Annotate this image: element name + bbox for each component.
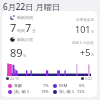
button[interactable]: 浅い眠り	[8, 89, 49, 94]
staticText: 101	[75, 23, 91, 35]
staticText: 5:22	[85, 76, 93, 81]
button[interactable]: 覚醒	[8, 83, 49, 88]
staticText: 深い眠り	[59, 89, 76, 94]
staticText: 0%	[79, 83, 85, 88]
staticText: 覚醒	[14, 83, 22, 88]
staticText: %	[91, 52, 94, 57]
staticText: 19%	[41, 89, 49, 94]
button[interactable]: REM	[53, 83, 85, 88]
staticText: 72%	[77, 89, 85, 94]
staticText: 前回との比較	[72, 41, 94, 46]
staticText: 浅い眠り	[14, 89, 31, 94]
staticText: %	[23, 53, 27, 58]
staticText: 睡眠の質	[17, 37, 34, 42]
button[interactable]: 深い眠り	[53, 89, 85, 94]
staticText: REM	[59, 83, 68, 88]
staticText: %	[91, 29, 94, 34]
staticText: 目標達成度	[76, 18, 94, 23]
staticText: 7	[10, 20, 17, 35]
staticText: 7	[25, 20, 32, 35]
staticText: +5	[80, 46, 91, 58]
staticText: 睡眠時間	[17, 15, 33, 20]
staticText: 7%	[43, 83, 49, 88]
staticText: 時間	[17, 28, 25, 33]
staticText: 22:15	[10, 76, 20, 81]
staticText: 分	[32, 28, 36, 33]
staticText: 89	[10, 45, 23, 60]
staticText: 6月22日 月曜日	[3, 1, 61, 12]
